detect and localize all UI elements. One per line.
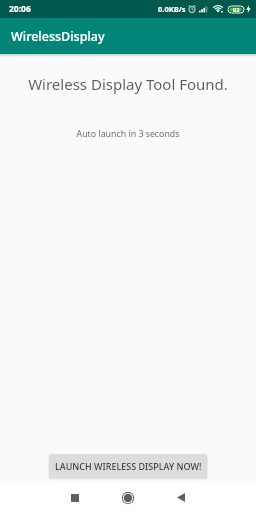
staticText: 0.0KB/s: [158, 4, 186, 14]
staticText: 92: [233, 6, 240, 13]
button[interactable]: Back: [165, 483, 197, 512]
button[interactable]: LAUNCH WIRELESS DISPLAY NOW!: [49, 454, 207, 478]
staticText: LAUNCH WIRELESS DISPLAY NOW!: [55, 460, 202, 472]
staticText: WirelessDisplay: [11, 28, 105, 45]
button[interactable]: Recent apps: [59, 483, 91, 512]
staticText: 20:06: [9, 3, 31, 15]
staticText: Wireless Display Tool Found.: [0, 74, 256, 94]
staticText: Auto launch in 3 seconds: [0, 128, 256, 140]
button[interactable]: Home: [112, 483, 144, 512]
